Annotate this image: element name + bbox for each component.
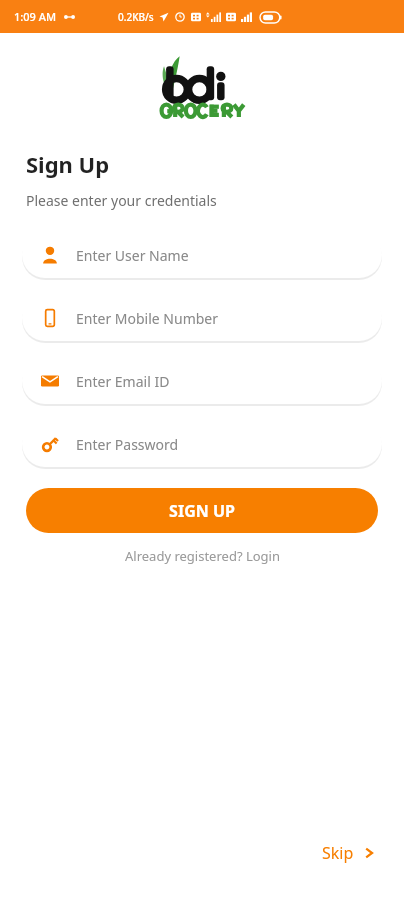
staticText: Enter Mobile Number: [76, 309, 219, 328]
staticText: SIGN UP: [169, 500, 235, 522]
button[interactable]: SIGN UP: [26, 488, 378, 533]
button[interactable]: Skip: [314, 836, 384, 870]
staticText: 0.2KB/s: [118, 10, 154, 24]
button[interactable]: Enter Mobile Number: [22, 295, 382, 341]
button[interactable]: Enter Email ID: [22, 358, 382, 404]
staticText: Skip: [322, 842, 354, 864]
staticText: Enter Email ID: [76, 372, 170, 391]
button[interactable]: Enter Password: [22, 421, 382, 467]
staticText: Enter User Name: [76, 246, 189, 265]
staticText: Sign Up: [26, 149, 110, 179]
staticText: Please enter your credentials: [26, 191, 217, 210]
staticText: 1:09 AM: [14, 9, 57, 24]
button[interactable]: Enter User Name: [22, 232, 382, 278]
staticText: Already registered? Login: [125, 547, 280, 565]
staticText: Enter Password: [76, 435, 179, 454]
button[interactable]: Already registered? Login: [0, 543, 404, 569]
